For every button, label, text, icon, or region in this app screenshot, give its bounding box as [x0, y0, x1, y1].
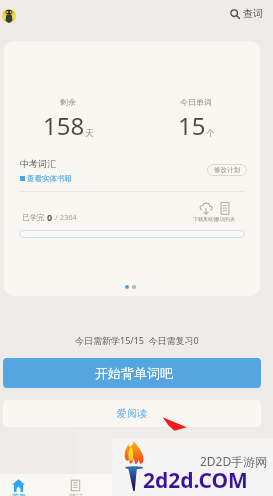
button[interactable]: 爱阅读	[3, 400, 261, 427]
staticText: 首页	[12, 492, 26, 496]
staticText: 2D2D手游网	[200, 453, 268, 469]
button[interactable]: Home	[12, 479, 25, 492]
staticText: 158	[43, 109, 85, 142]
staticText: 2d2d.COM	[143, 466, 248, 495]
staticText: 剩余	[60, 97, 76, 107]
button[interactable]: 修改计划	[207, 164, 247, 176]
staticText: / 2364	[53, 212, 77, 222]
staticText: 中考词汇	[20, 158, 56, 169]
staticText: 15	[178, 109, 206, 142]
staticText: 笔记	[69, 492, 83, 496]
button[interactable]: 开始背单词吧	[3, 358, 261, 388]
staticText: 开始背单词吧	[95, 365, 173, 381]
staticText: 查看实体书籍	[27, 174, 72, 183]
staticText: 0	[47, 211, 53, 223]
button[interactable]: 下载离线包	[193, 202, 218, 222]
staticText: 今日单词	[180, 97, 212, 107]
staticText: 个	[206, 128, 215, 139]
staticText: 天	[85, 128, 94, 139]
button[interactable]: 单词列表	[215, 202, 235, 222]
staticText: 修改计划	[214, 166, 240, 174]
staticText: 下载离线包	[193, 216, 218, 222]
button[interactable]: Notes	[70, 480, 81, 491]
staticText: 已学完	[22, 212, 47, 222]
staticText: 爱阅读	[117, 407, 147, 420]
staticText: 单词列表	[215, 216, 235, 222]
staticText: 查词	[243, 7, 263, 20]
staticText: 今日需新学15/15 今日需复习0	[75, 334, 199, 346]
button[interactable]: Profile	[2, 9, 16, 23]
button[interactable]: 查词	[228, 5, 265, 22]
